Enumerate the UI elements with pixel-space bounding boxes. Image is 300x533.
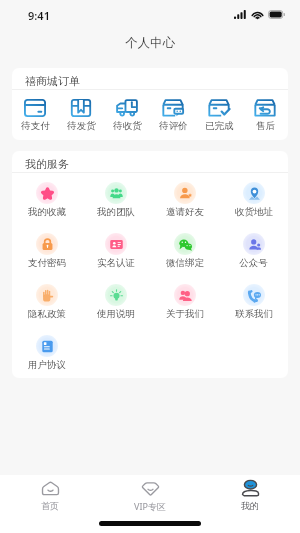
button[interactable]: 邀请好友 [150, 178, 219, 229]
staticText: 微信绑定 [166, 257, 204, 269]
staticText: 使用说明 [97, 308, 135, 320]
button[interactable]: 待发货 [58, 90, 104, 140]
button[interactable]: 收货地址 [219, 178, 288, 229]
button[interactable]: 用户协议 [12, 331, 81, 378]
staticText: 我的服务 [25, 157, 69, 171]
button[interactable]: 待收货 [104, 90, 150, 140]
staticText: 已完成 [205, 120, 234, 132]
staticText: 关于我们 [166, 308, 204, 320]
button[interactable]: 微信绑定 [150, 229, 219, 280]
staticText: 待发货 [67, 120, 96, 132]
staticText: 我的收藏 [28, 206, 66, 218]
button[interactable]: 售后 [242, 90, 288, 140]
staticText: 隐私政策 [28, 308, 66, 320]
other: Home [41, 481, 60, 497]
button[interactable]: Home [0, 480, 100, 511]
staticText: 支付密码 [28, 257, 66, 269]
button[interactable]: 实名认证 [81, 229, 150, 280]
other: Mine [241, 481, 260, 497]
staticText: 收货地址 [235, 206, 273, 218]
button[interactable]: 支付密码 [12, 229, 81, 280]
button[interactable]: VIP [100, 480, 200, 512]
button[interactable]: Mine [200, 480, 300, 511]
button[interactable]: 联系我们 [219, 280, 288, 331]
staticText: 售后 [256, 120, 275, 132]
staticText: 个人中心 [125, 35, 175, 51]
staticText: 待支付 [21, 120, 50, 132]
staticText: VIP专区 [134, 500, 166, 512]
button[interactable]: 我的团队 [81, 178, 150, 229]
staticText: 邀请好友 [166, 206, 204, 218]
button[interactable]: 关于我们 [150, 280, 219, 331]
button[interactable]: 隐私政策 [12, 280, 81, 331]
staticText: 我的 [241, 500, 259, 511]
staticText: 9:41 [28, 8, 50, 23]
button[interactable]: 待支付 [12, 90, 58, 140]
staticText: 待评价 [159, 120, 188, 132]
button[interactable]: 待评价 [150, 90, 196, 140]
button[interactable]: 我的收藏 [12, 178, 81, 229]
staticText: 我的团队 [97, 206, 135, 218]
staticText: 禧商城订单 [25, 74, 80, 88]
staticText: 联系我们 [235, 308, 273, 320]
staticText: 公众号 [239, 257, 268, 269]
staticText: 待收货 [113, 120, 142, 132]
other: VIP [141, 481, 160, 497]
staticText: 首页 [41, 500, 59, 511]
button[interactable]: 公众号 [219, 229, 288, 280]
staticText: 用户协议 [28, 359, 66, 371]
button[interactable]: 已完成 [196, 90, 242, 140]
staticText: 实名认证 [97, 257, 135, 269]
button[interactable]: 使用说明 [81, 280, 150, 331]
